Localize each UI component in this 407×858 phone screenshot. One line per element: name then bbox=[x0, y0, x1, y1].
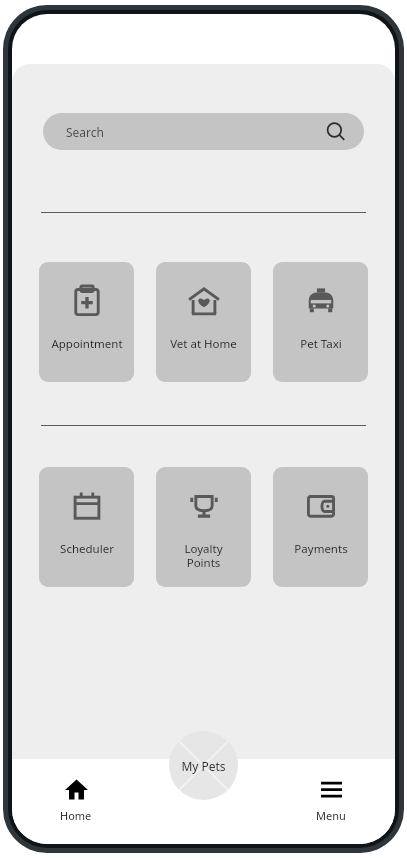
button[interactable]: Search bbox=[43, 113, 364, 150]
staticText: Scheduler bbox=[60, 541, 114, 557]
button[interactable]: Appointment bbox=[39, 262, 134, 382]
staticText: Home bbox=[60, 808, 92, 823]
button[interactable]: Vet at Home bbox=[156, 262, 251, 382]
staticText: Loyalty Points bbox=[184, 541, 223, 570]
staticText: Payments bbox=[294, 541, 348, 557]
button[interactable]: My Pets bbox=[169, 731, 238, 800]
staticText: My Pets bbox=[181, 758, 226, 774]
staticText: Vet at Home bbox=[170, 336, 237, 352]
staticText: Appointment bbox=[51, 336, 123, 352]
button[interactable]: Payments bbox=[273, 467, 368, 587]
button[interactable]: Scheduler bbox=[39, 467, 134, 587]
staticText: Search bbox=[66, 124, 104, 140]
button[interactable]: Home bbox=[12, 759, 139, 844]
button[interactable]: Loyalty Points bbox=[156, 467, 251, 587]
staticText: Pet Taxi bbox=[300, 336, 342, 352]
button[interactable]: Pet Taxi bbox=[273, 262, 368, 382]
staticText: Menu bbox=[316, 808, 346, 823]
other: Search bbox=[326, 122, 346, 142]
button[interactable]: Menu bbox=[267, 759, 395, 844]
